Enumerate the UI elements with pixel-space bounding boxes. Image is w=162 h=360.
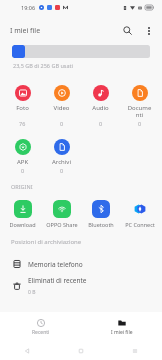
button[interactable]: PC Connect xyxy=(120,200,159,228)
staticText: Eliminati di recente xyxy=(28,276,87,285)
button[interactable]: Recenti xyxy=(0,319,81,336)
staticText: 0 B xyxy=(28,289,36,296)
staticText: Recenti xyxy=(32,329,50,336)
staticText: 23,5 GB di 256 GB usati xyxy=(13,62,73,69)
staticText: 0 xyxy=(138,120,142,127)
staticText: 0 xyxy=(99,120,103,127)
button[interactable]: Foto xyxy=(3,85,42,127)
staticText: 0 xyxy=(60,167,64,174)
staticText: Memoria telefono xyxy=(28,260,83,269)
button[interactable]: Video xyxy=(42,85,81,127)
button[interactable]: Bluetooth xyxy=(81,200,120,228)
staticText: PC Connect xyxy=(125,221,155,228)
staticText: Download xyxy=(9,221,36,228)
staticText: Posizioni di archiviazione xyxy=(11,238,82,246)
staticText: ORIGINI xyxy=(11,183,33,190)
staticText: 19:06 xyxy=(21,4,36,11)
button[interactable]: Archivi xyxy=(42,139,81,174)
staticText: 76 xyxy=(19,120,26,127)
button[interactable]: OPPO Share xyxy=(42,200,81,228)
staticText: Video xyxy=(48,104,75,112)
staticText: I miei file xyxy=(111,329,133,336)
staticText: Bluetooth xyxy=(88,221,114,228)
button[interactable]: Back xyxy=(0,342,54,360)
button[interactable]: Audio xyxy=(81,85,120,127)
staticText: Documenti xyxy=(126,104,153,118)
button[interactable]: Memoria telefono xyxy=(0,253,162,275)
button[interactable]: Recent apps xyxy=(108,342,162,360)
button[interactable]: More options xyxy=(138,20,159,41)
staticText: Foto xyxy=(9,104,36,112)
button[interactable]: APK xyxy=(3,139,42,174)
button[interactable]: Download xyxy=(3,200,42,228)
staticText: Audio xyxy=(87,104,114,112)
button[interactable]: Documenti xyxy=(120,85,159,127)
staticText: APK xyxy=(9,158,36,165)
staticText: OPPO Share xyxy=(46,221,78,228)
staticText: Archivi xyxy=(48,158,75,165)
button[interactable]: I miei file xyxy=(81,319,162,336)
button[interactable]: Search xyxy=(117,20,138,41)
staticText: I miei file xyxy=(10,26,41,36)
button[interactable]: Home xyxy=(54,342,108,360)
staticText: 0 xyxy=(60,120,64,127)
button[interactable]: Eliminati di recente xyxy=(0,275,162,297)
staticText: 0 xyxy=(21,167,25,174)
